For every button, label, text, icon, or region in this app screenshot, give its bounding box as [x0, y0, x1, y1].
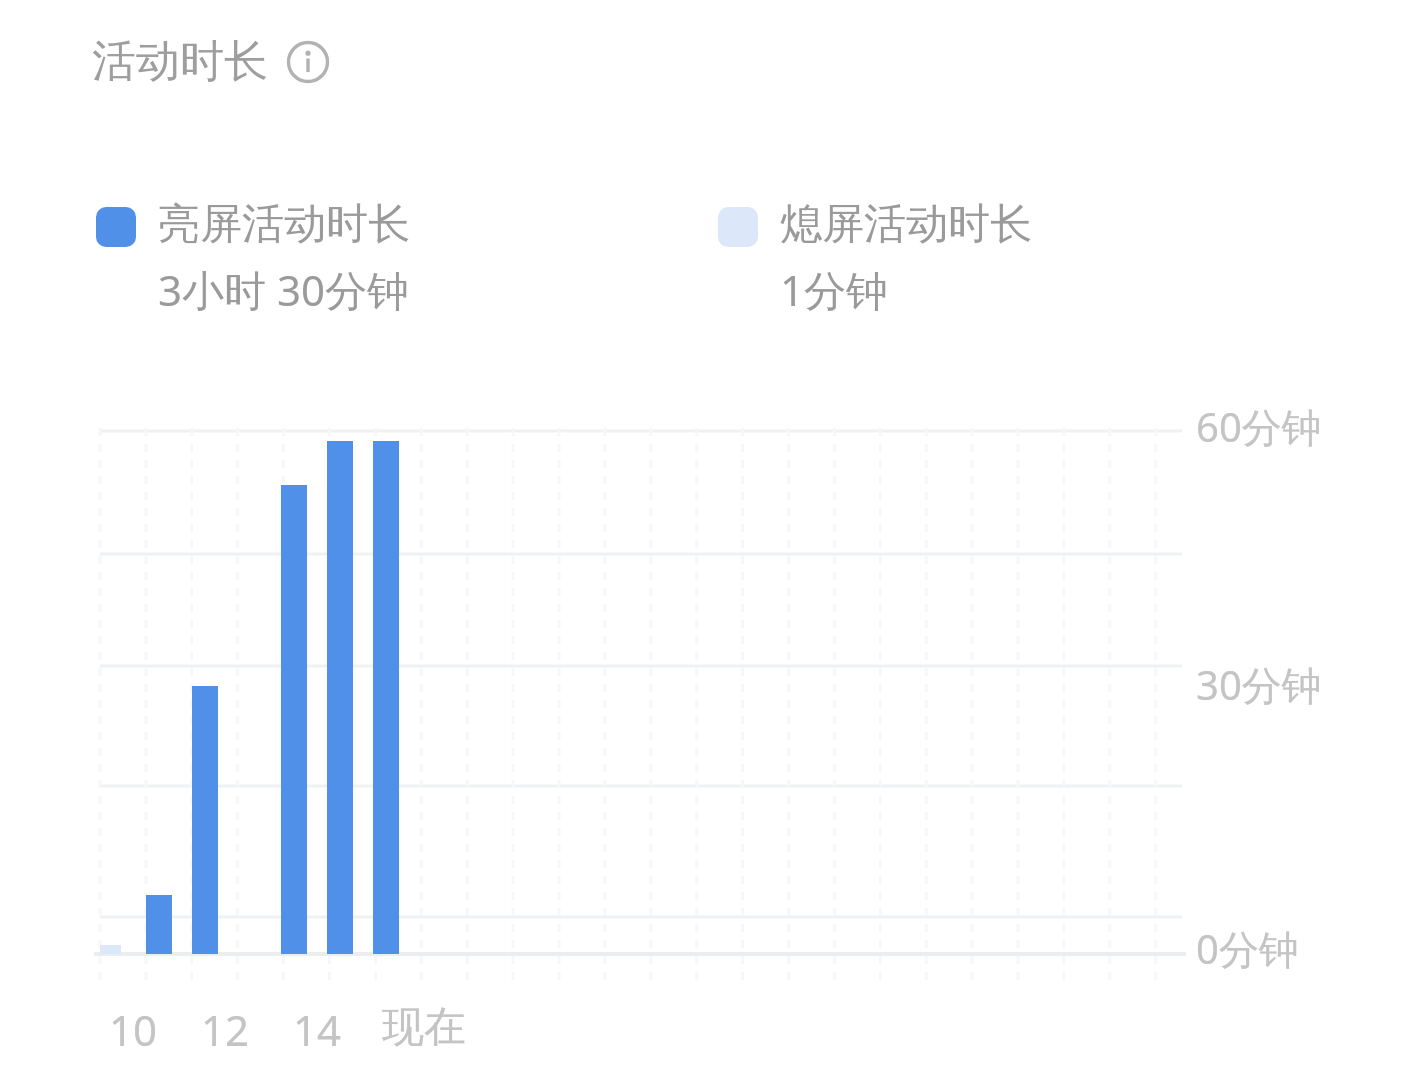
staticText: 10: [109, 1001, 158, 1058]
staticText: 30分钟: [1196, 657, 1322, 712]
button[interactable]: 熄屏活动时长: [718, 198, 1032, 318]
staticText: 现在: [382, 1001, 466, 1054]
button[interactable]: 亮屏活动时长: [96, 198, 410, 318]
staticText: 14: [293, 1001, 342, 1058]
staticText: 60分钟: [1196, 399, 1322, 454]
staticText: 0分钟: [1196, 921, 1299, 976]
staticText: 熄屏活动时长: [780, 198, 1032, 251]
staticText: 活动时长: [92, 34, 268, 89]
staticText: 3小时 30分钟: [158, 261, 409, 318]
staticText: 12: [201, 1001, 250, 1058]
staticText: 1分钟: [780, 261, 889, 318]
staticText: 亮屏活动时长: [158, 198, 410, 251]
other: Info: [286, 40, 330, 84]
button[interactable]: 活动时长: [88, 30, 334, 93]
